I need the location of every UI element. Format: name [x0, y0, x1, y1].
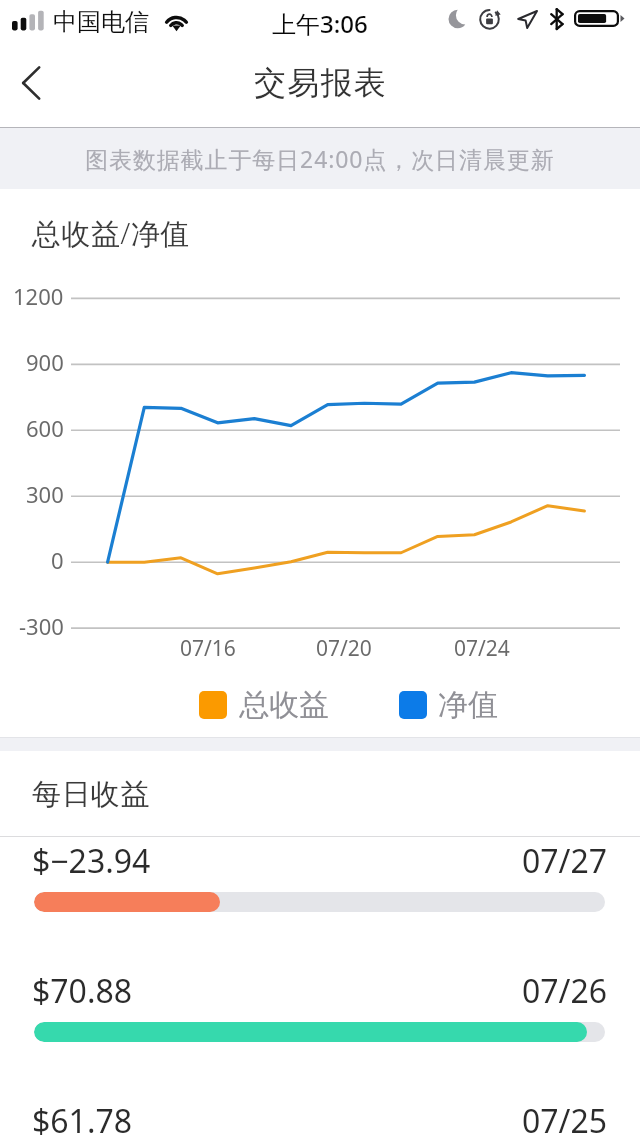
staticText: 每日收益 [32, 776, 150, 813]
staticText: $70.88 [32, 969, 133, 1013]
staticText: 1200 [13, 281, 64, 311]
staticText: 净值 [438, 686, 498, 724]
staticText: 300 [26, 479, 64, 509]
staticText: 交易报表 [254, 63, 387, 103]
staticText: 07/26 [522, 969, 608, 1013]
button[interactable]: Back [6, 59, 58, 111]
staticText: 图表数据截止于每日24:00点，次日清晨更新 [85, 143, 555, 174]
button[interactable]: $70.88 [0, 967, 640, 1067]
staticText: 07/27 [522, 839, 608, 883]
staticText: 0 [51, 545, 64, 575]
button[interactable]: $61.78 [0, 1097, 640, 1136]
staticText: 07/24 [454, 634, 510, 663]
button[interactable]: $−23.94 [0, 837, 640, 937]
staticText: 07/25 [522, 1099, 608, 1136]
staticText: 07/20 [316, 634, 372, 663]
staticText: -300 [19, 611, 64, 641]
staticText: 600 [26, 413, 64, 443]
staticText: $61.78 [32, 1099, 133, 1136]
staticText: 900 [26, 347, 64, 377]
staticText: $−23.94 [32, 839, 151, 883]
staticText: 中国电信 [53, 7, 149, 37]
staticText: 上午3:06 [272, 7, 368, 40]
staticText: 总收益 [239, 686, 329, 724]
staticText: 总收益/净值 [32, 213, 190, 253]
staticText: 07/16 [180, 634, 236, 663]
